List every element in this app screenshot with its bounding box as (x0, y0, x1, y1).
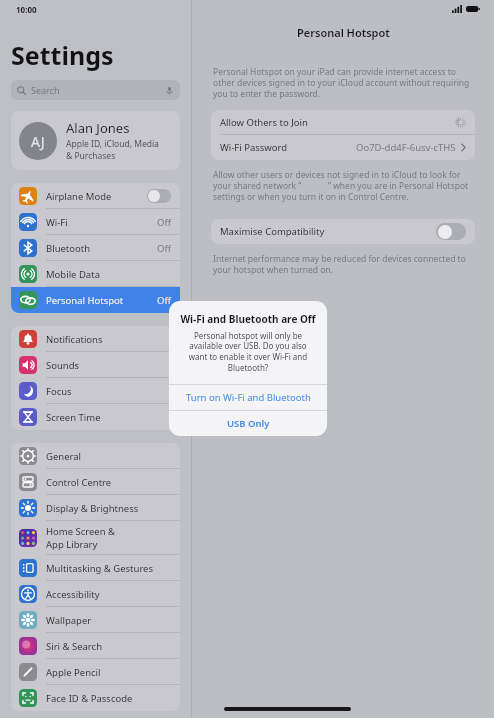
button[interactable]: Display & Brightness (11, 495, 180, 521)
staticText: Bluetooth (46, 242, 91, 255)
staticText: Allow Others to Join (220, 116, 455, 129)
staticText: Sounds (46, 359, 80, 372)
button[interactable]: Control Centre (11, 469, 180, 495)
staticText: & Purchases (66, 150, 116, 162)
staticText: Wi-Fi Password (220, 141, 356, 154)
staticText: Personal Hotspot on your iPad can provid… (213, 66, 473, 99)
button[interactable]: USB Only (169, 411, 327, 436)
button[interactable]: Sounds (11, 352, 180, 378)
staticText: Turn on Wi-Fi and Bluetooth (186, 391, 311, 404)
button[interactable]: Turn on Wi-Fi and Bluetooth (169, 385, 327, 410)
staticText: Personal Hotspot (297, 25, 390, 40)
staticText: Internet performance may be reduced for … (213, 253, 473, 275)
button[interactable]: Wi-Fi Password (211, 135, 475, 160)
staticText: Search (31, 84, 165, 96)
staticText: Apple Pencil (46, 666, 101, 679)
staticText: Home Screen & (46, 525, 116, 538)
button[interactable]: Airplane Mode (11, 183, 180, 209)
button[interactable]: Home Screen & (11, 521, 180, 555)
staticText: Focus (46, 385, 72, 398)
staticText: Accessibility (46, 588, 100, 601)
staticText: Oo7D-dd4F-6usv-cTH5 (356, 141, 456, 154)
button[interactable]: Bluetooth (11, 235, 180, 261)
staticText: Allow other users or devices not signed … (213, 169, 473, 202)
staticText: Off (157, 216, 171, 229)
staticText: 10:00 (16, 4, 37, 15)
staticText: AJ (31, 132, 45, 151)
staticText: Personal hotspot will only be available … (179, 330, 317, 374)
staticText: General (46, 450, 82, 463)
button[interactable]: Multitasking & Gestures (11, 555, 180, 581)
button[interactable]: Notifications (11, 326, 180, 352)
button[interactable]: Maximise Compatibility (211, 219, 475, 244)
staticText: Siri & Search (46, 640, 103, 653)
button[interactable]: Screen Time (11, 404, 180, 430)
button[interactable]: Airplane Mode toggle (147, 189, 171, 203)
button[interactable]: Mobile Data (11, 261, 180, 287)
staticText: Wi-Fi (46, 216, 68, 229)
button[interactable]: Wi-Fi (11, 209, 180, 235)
staticText: Apple ID, iCloud, Media (66, 138, 159, 150)
staticText: Display & Brightness (46, 502, 139, 515)
staticText: Maximise Compatibility (220, 225, 436, 238)
staticText: Control Centre (46, 476, 112, 489)
staticText: Personal Hotspot (46, 294, 124, 307)
button[interactable]: Accessibility (11, 581, 180, 607)
staticText: Settings (11, 38, 114, 72)
button[interactable]: Allow Others to Join (211, 110, 475, 135)
staticText: Mobile Data (46, 268, 100, 281)
button[interactable]: Focus (11, 378, 180, 404)
button[interactable]: Face ID & Passcode (11, 685, 180, 711)
staticText: Multitasking & Gestures (46, 562, 154, 575)
staticText: Wallpaper (46, 614, 92, 627)
button[interactable]: Apple Pencil (11, 659, 180, 685)
staticText: Off (157, 242, 171, 255)
staticText: App Library (46, 538, 98, 551)
staticText: Face ID & Passcode (46, 692, 133, 705)
staticText: USB Only (227, 417, 270, 430)
staticText: Screen Time (46, 411, 101, 424)
button[interactable]: Wallpaper (11, 607, 180, 633)
staticText: Alan Jones (66, 119, 130, 137)
staticText: Off (157, 294, 171, 307)
staticText: Airplane Mode (46, 190, 112, 203)
button[interactable]: Search (11, 80, 180, 100)
button[interactable]: General (11, 443, 180, 469)
button[interactable]: Siri & Search (11, 633, 180, 659)
button[interactable]: AJ (11, 111, 180, 170)
button[interactable]: Personal Hotspot (11, 287, 180, 313)
staticText: Notifications (46, 333, 103, 346)
button[interactable]: Maximise Compatibility toggle (436, 223, 466, 240)
staticText: Wi-Fi and Bluetooth are Off (179, 312, 317, 326)
